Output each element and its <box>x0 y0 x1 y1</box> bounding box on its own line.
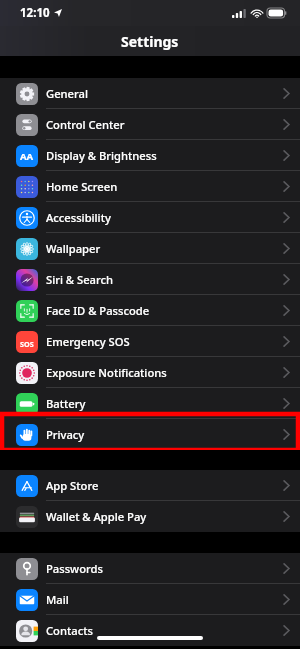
staticText: Contacts <box>46 623 283 638</box>
button[interactable]: Exposure Notifications <box>0 357 300 388</box>
staticText: Settings <box>121 32 179 51</box>
staticText: Face ID & Passcode <box>46 303 283 318</box>
button[interactable]: Battery <box>0 388 300 419</box>
button[interactable]: Siri & Search <box>0 264 300 295</box>
staticText: Wallet & Apple Pay <box>46 509 283 524</box>
button[interactable]: App Store <box>0 470 300 501</box>
staticText: Wallpaper <box>46 241 283 256</box>
button[interactable]: Home Screen <box>0 171 300 202</box>
button[interactable]: Face ID & Passcode <box>0 295 300 326</box>
staticText: Exposure Notifications <box>46 365 283 380</box>
button[interactable]: Passwords <box>0 553 300 584</box>
button[interactable]: Emergency SOS <box>0 326 300 357</box>
staticText: Privacy <box>46 427 283 442</box>
button[interactable]: Contacts <box>0 615 300 646</box>
staticText: Siri & Search <box>46 272 283 287</box>
staticText: Control Center <box>46 117 283 132</box>
staticText: Passwords <box>46 561 283 576</box>
staticText: Mail <box>46 592 283 607</box>
staticText: SOS <box>20 339 34 349</box>
staticText: 12:10 <box>20 5 50 21</box>
staticText: AA <box>20 150 34 163</box>
staticText: Accessibility <box>46 210 283 225</box>
button[interactable]: Wallpaper <box>0 233 300 264</box>
staticText: Display & Brightness <box>46 148 283 163</box>
staticText: App Store <box>46 478 283 493</box>
button[interactable]: General <box>0 78 300 109</box>
button[interactable]: Wallet & Apple Pay <box>0 501 300 532</box>
staticText: General <box>46 86 283 101</box>
button[interactable]: Control Center <box>0 109 300 140</box>
staticText: Battery <box>46 396 283 411</box>
staticText: Home Screen <box>46 179 283 194</box>
button[interactable]: Accessibility <box>0 202 300 233</box>
button[interactable]: Privacy <box>0 419 300 450</box>
button[interactable]: Mail <box>0 584 300 615</box>
button[interactable]: Display & Brightness <box>0 140 300 171</box>
staticText: Emergency SOS <box>46 334 283 349</box>
